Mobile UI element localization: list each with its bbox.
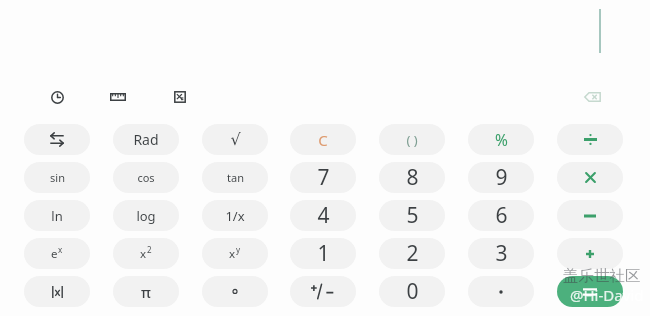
staticText: 2 [147, 244, 152, 255]
button[interactable] [24, 276, 90, 307]
button[interactable]: 8 [379, 162, 445, 193]
staticText: x [58, 244, 63, 255]
button[interactable]: History [45, 85, 69, 109]
button[interactable]: Swap [24, 124, 90, 155]
button[interactable]: Backspace [580, 85, 604, 109]
staticText: x [140, 246, 147, 262]
staticText: 8 [406, 163, 419, 192]
button[interactable]: Unit converter [106, 85, 130, 109]
staticText: sin [50, 170, 65, 185]
button[interactable]: 7 [290, 162, 356, 193]
button[interactable]: % [468, 124, 534, 155]
staticText: 5 [406, 201, 419, 230]
button[interactable]: 9 [468, 162, 534, 193]
button[interactable]: Plus [557, 238, 623, 269]
button[interactable]: 5 [379, 200, 445, 231]
button[interactable] [202, 276, 268, 307]
staticText: 盖乐世社区 [563, 266, 641, 286]
button[interactable]: Rad [113, 124, 179, 155]
button[interactable]: x [113, 238, 179, 269]
button[interactable]: C [290, 124, 356, 155]
staticText: 1/x [225, 207, 245, 225]
staticText: 4 [317, 201, 330, 230]
staticText: tan [227, 170, 244, 185]
button[interactable]: log [113, 200, 179, 231]
button[interactable]: √ [202, 124, 268, 155]
staticText: @Hi-David [570, 285, 644, 305]
button[interactable]: 6 [468, 200, 534, 231]
button[interactable]: ( ) [379, 124, 445, 155]
staticText: % [495, 129, 508, 150]
staticText: 7 [317, 163, 330, 192]
button[interactable]: cos [113, 162, 179, 193]
button[interactable] [468, 276, 534, 307]
staticText: √ [230, 130, 241, 149]
staticText: 6 [495, 201, 508, 230]
staticText: 2 [406, 239, 419, 268]
staticText: 0 [406, 277, 419, 306]
staticText: 1 [317, 239, 330, 268]
button[interactable]: 1 [290, 238, 356, 269]
staticText: 9 [495, 163, 508, 192]
button[interactable]: 0 [379, 276, 445, 307]
staticText: cos [137, 170, 155, 185]
button[interactable]: π [113, 276, 179, 307]
staticText: y [236, 244, 241, 255]
button[interactable]: 1/x [202, 200, 268, 231]
button[interactable]: tan [202, 162, 268, 193]
staticText: log [136, 207, 156, 225]
button[interactable]: sin [24, 162, 90, 193]
button[interactable]: Minus [557, 200, 623, 231]
staticText: e [51, 246, 58, 262]
button[interactable]: Toggle sign [290, 276, 356, 307]
staticText: Rad [133, 130, 159, 149]
staticText: 3 [495, 239, 508, 268]
button[interactable]: 3 [468, 238, 534, 269]
staticText: π [141, 282, 151, 302]
staticText: ( ) [406, 131, 418, 149]
button[interactable]: Multiply [557, 162, 623, 193]
button[interactable]: 4 [290, 200, 356, 231]
button[interactable]: Graph [168, 85, 192, 109]
staticText: x [229, 246, 236, 262]
button[interactable]: x [202, 238, 268, 269]
button[interactable]: e [24, 238, 90, 269]
staticText: C [318, 130, 328, 150]
button[interactable]: 2 [379, 238, 445, 269]
staticText: ln [51, 207, 63, 225]
button[interactable]: Equals [557, 276, 623, 307]
button[interactable]: Divide [557, 124, 623, 155]
button[interactable]: ln [24, 200, 90, 231]
